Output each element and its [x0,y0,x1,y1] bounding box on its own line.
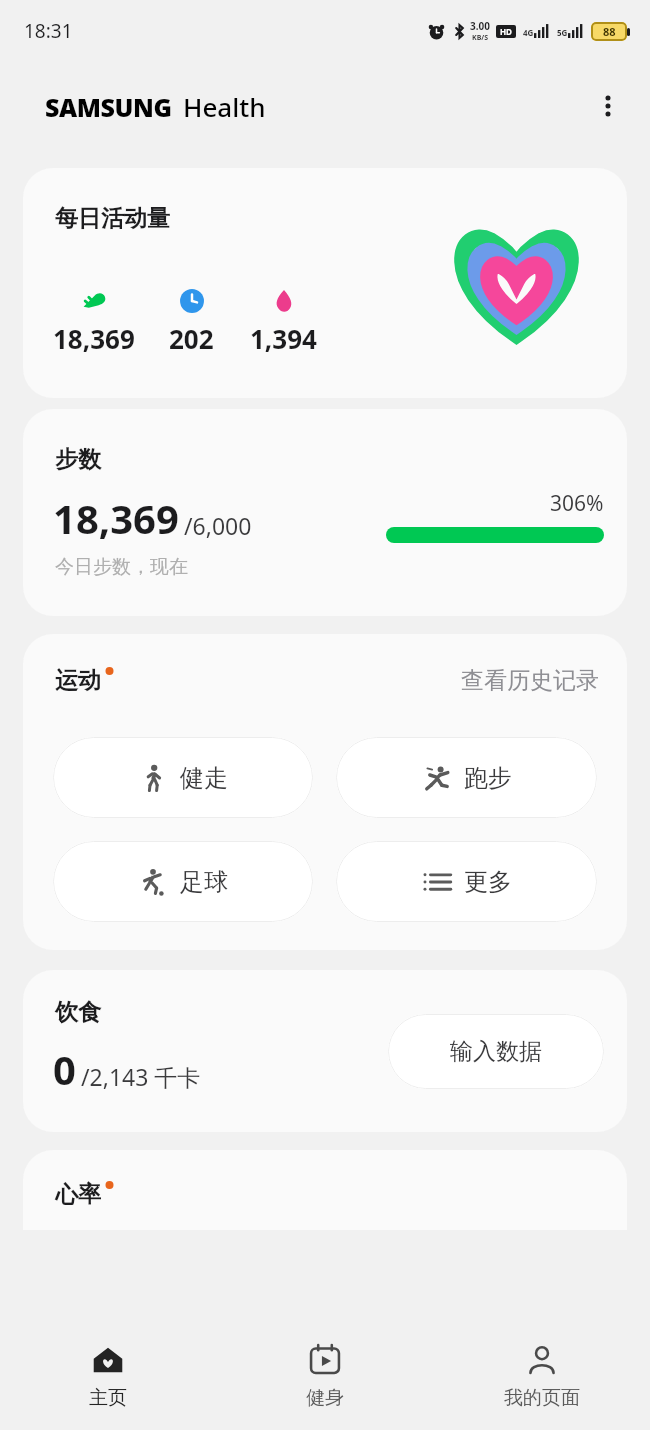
button[interactable]: 更多 [336,841,597,922]
staticText: KB/S [472,33,489,43]
staticText: 4G [523,27,534,38]
button[interactable]: 跑步 [336,737,597,818]
staticText: 跑步 [464,763,512,793]
staticText: 输入数据 [450,1037,542,1066]
staticText: 每日活动量 [55,204,170,233]
staticText: 88 [603,24,616,39]
button[interactable]: 我的页面 [433,1322,650,1430]
staticText: 主页 [89,1386,127,1410]
button[interactable]: 主页 [0,1322,216,1430]
staticText: 306% [550,489,604,518]
button[interactable]: 输入数据 [388,1014,604,1089]
staticText: 今日步数，现在 [55,555,188,579]
staticText: 步数 [55,445,101,474]
button[interactable]: More options [584,82,632,130]
staticText: 18,369 [53,321,135,356]
staticText: Health [183,89,266,124]
button[interactable]: 步数 [23,409,627,616]
staticText: 3.00 [470,19,490,33]
staticText: 运动 [55,666,101,695]
button[interactable]: 心率 [23,1150,627,1230]
button[interactable]: 每日活动量 [23,168,627,398]
staticText: 我的页面 [504,1386,580,1410]
staticText: HD [500,26,512,37]
staticText: 1,394 [250,321,317,356]
staticText: 饮食 [55,998,101,1027]
staticText: 18,369 [53,491,179,545]
staticText: 足球 [180,867,228,897]
button[interactable]: 健身 [216,1322,433,1430]
button[interactable]: 足球 [53,841,313,922]
staticText: /6,000 [184,510,252,541]
staticText: 18:31 [24,18,73,44]
button[interactable]: 运动 [23,634,627,950]
staticText: 健身 [306,1386,344,1410]
staticText: 5G [557,27,568,38]
staticText: 0 [53,1042,76,1096]
staticText: 健走 [180,763,228,793]
button[interactable]: 饮食 [23,970,627,1132]
staticText: 心率 [55,1180,101,1209]
staticText: 202 [169,321,214,356]
staticText: 更多 [464,867,512,897]
staticText: SAMSUNG [45,90,172,124]
button[interactable]: 健走 [53,737,313,818]
button[interactable]: 查看历史记录 [459,664,601,697]
staticText: /2,143 千卡 [81,1061,201,1092]
